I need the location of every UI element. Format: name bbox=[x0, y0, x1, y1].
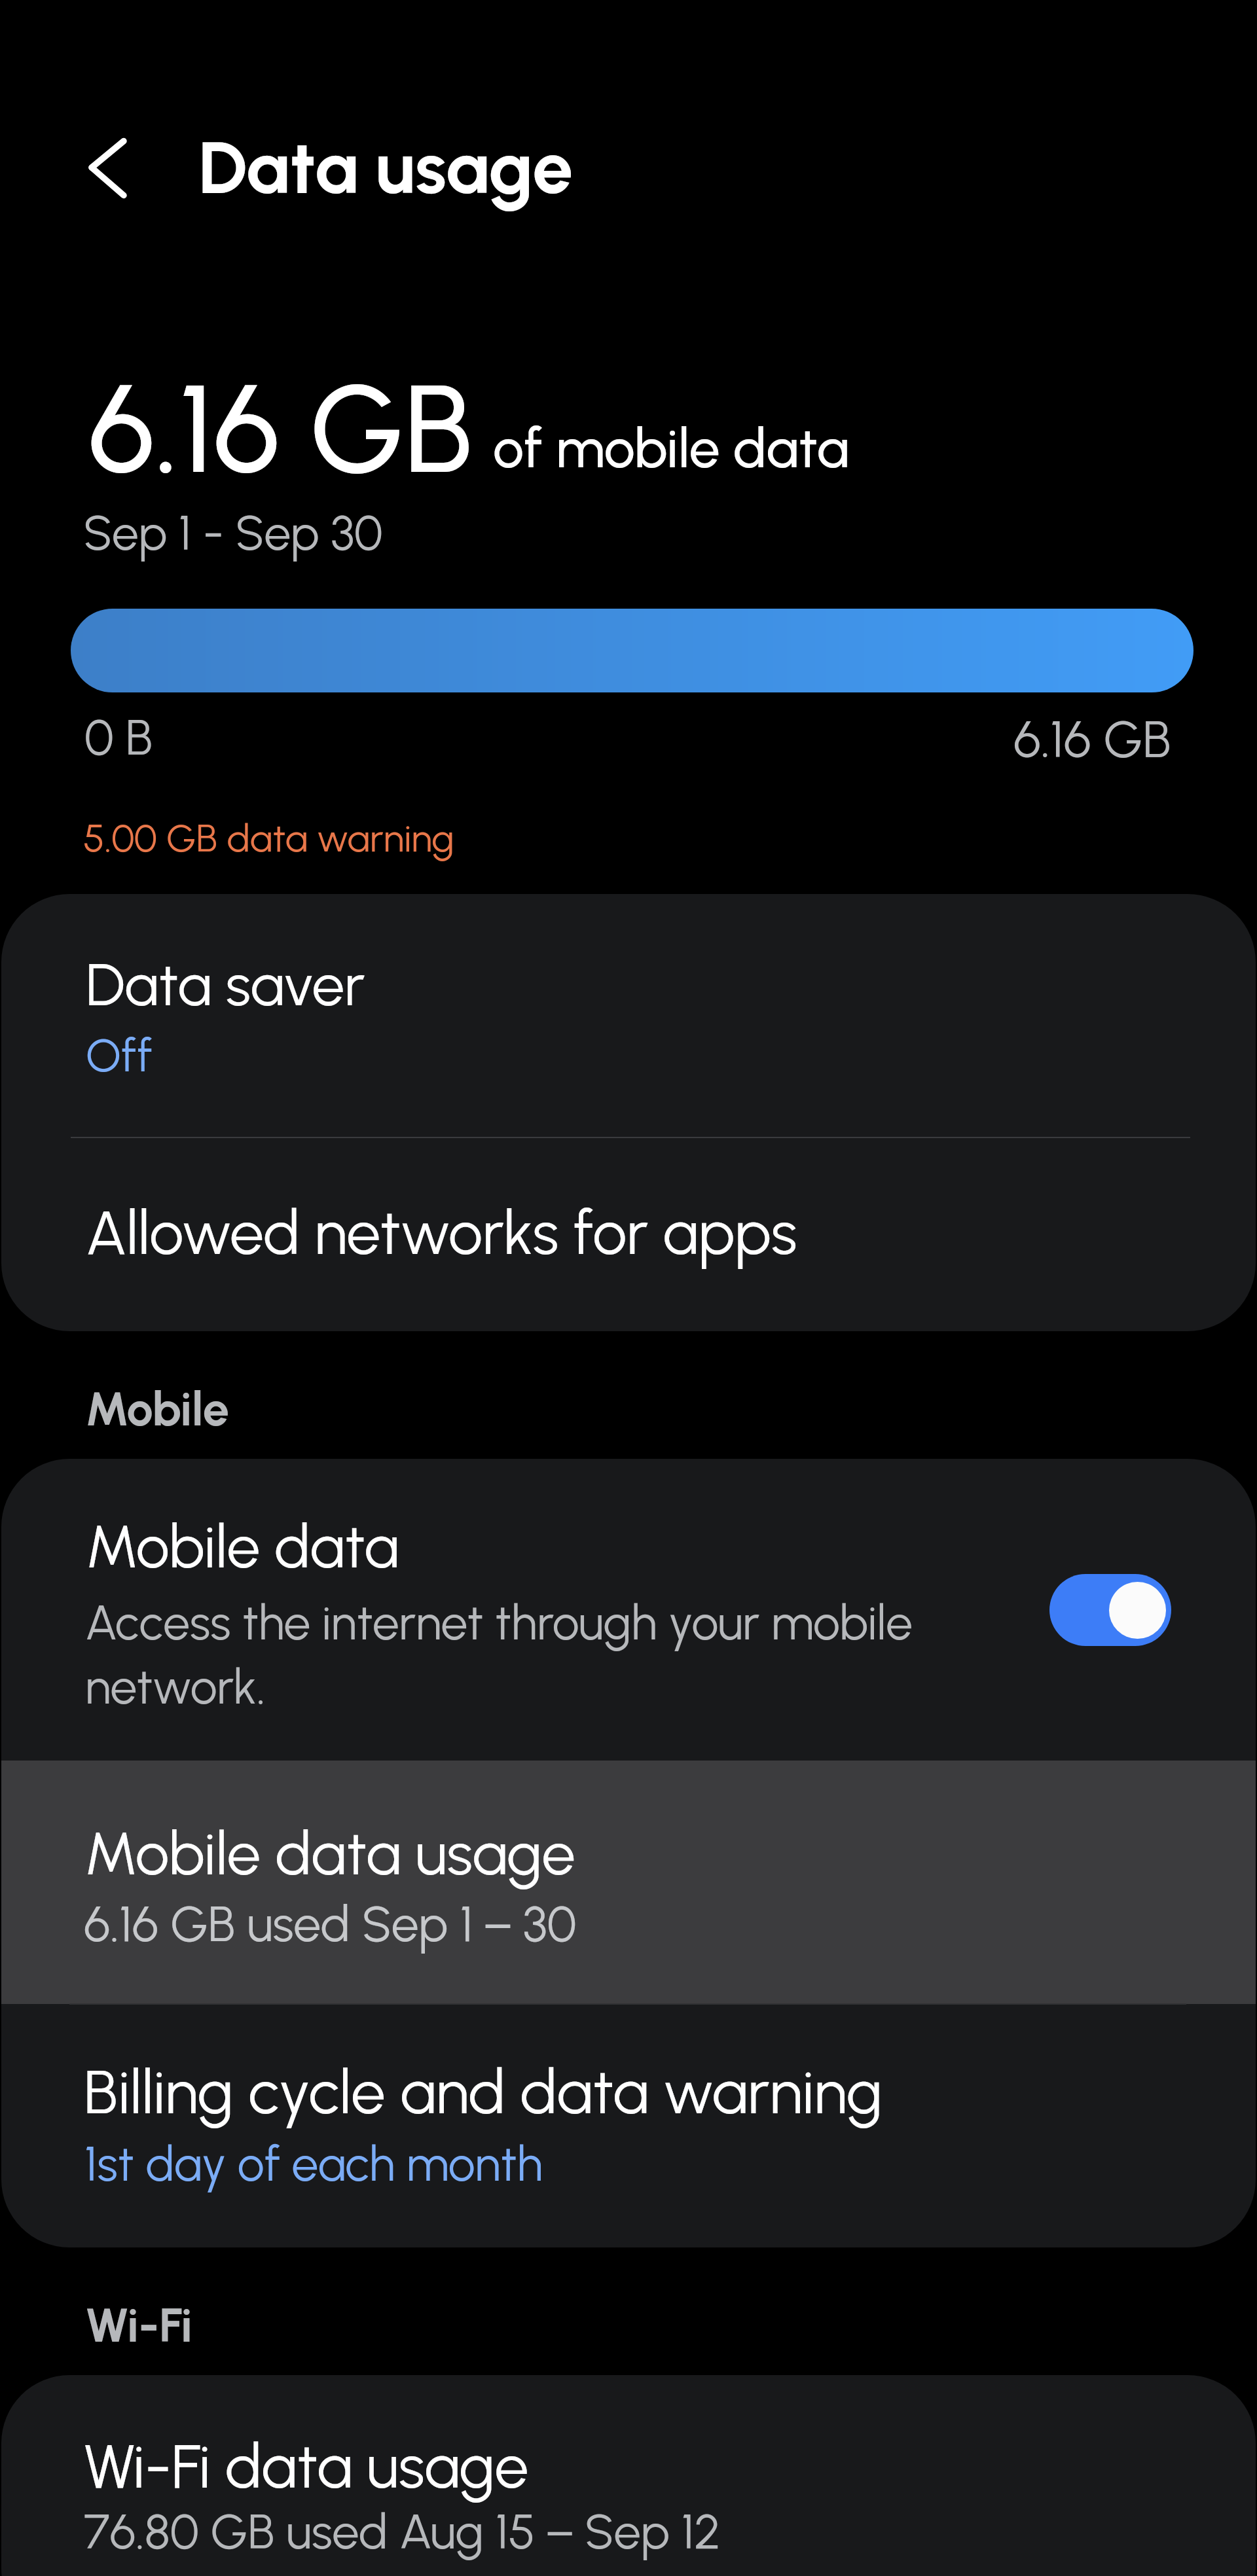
staticText: Wi-Fi data usage bbox=[84, 2430, 529, 2503]
staticText: 76.80 GB used Aug 15 – Sep 12 bbox=[84, 2503, 721, 2561]
button[interactable] bbox=[1, 2004, 1256, 2247]
staticText: 6.16 GB used Sep 1 – 30 bbox=[84, 1895, 577, 1954]
button[interactable]: Mobile data on bbox=[1049, 1574, 1171, 1646]
staticText: Mobile data bbox=[86, 1511, 399, 1583]
button[interactable] bbox=[1, 1459, 1256, 1761]
staticText: of mobile data bbox=[493, 415, 850, 481]
button[interactable] bbox=[1, 894, 1256, 1137]
button[interactable]: Navigate up bbox=[60, 120, 155, 215]
staticText: Wi-Fi bbox=[85, 2297, 192, 2353]
staticText: Mobile data usage bbox=[84, 1817, 575, 1889]
staticText: Allowed networks for apps bbox=[86, 1196, 797, 1270]
staticText: Billing cycle and data warning bbox=[84, 2055, 883, 2129]
staticText: Sep 1 - Sep 30 bbox=[83, 505, 383, 562]
staticText: 1st day of each month bbox=[84, 2136, 543, 2193]
staticText: Access the internet through your mobile … bbox=[85, 1594, 1015, 1715]
button[interactable] bbox=[1, 2375, 1256, 2576]
staticText: Data usage bbox=[198, 124, 574, 211]
button[interactable] bbox=[1, 1137, 1256, 1331]
staticText: 6.16 GB bbox=[88, 355, 474, 503]
staticText: 5.00 GB data warning bbox=[83, 815, 455, 861]
staticText: Off bbox=[86, 1028, 153, 1082]
staticText: Mobile bbox=[85, 1381, 230, 1437]
staticText: Data saver bbox=[86, 950, 365, 1020]
button[interactable] bbox=[1, 1761, 1256, 2004]
staticText: 6.16 GB bbox=[851, 708, 1171, 770]
staticText: 0 B bbox=[84, 708, 153, 767]
button[interactable]: Data usage bbox=[183, 98, 681, 236]
